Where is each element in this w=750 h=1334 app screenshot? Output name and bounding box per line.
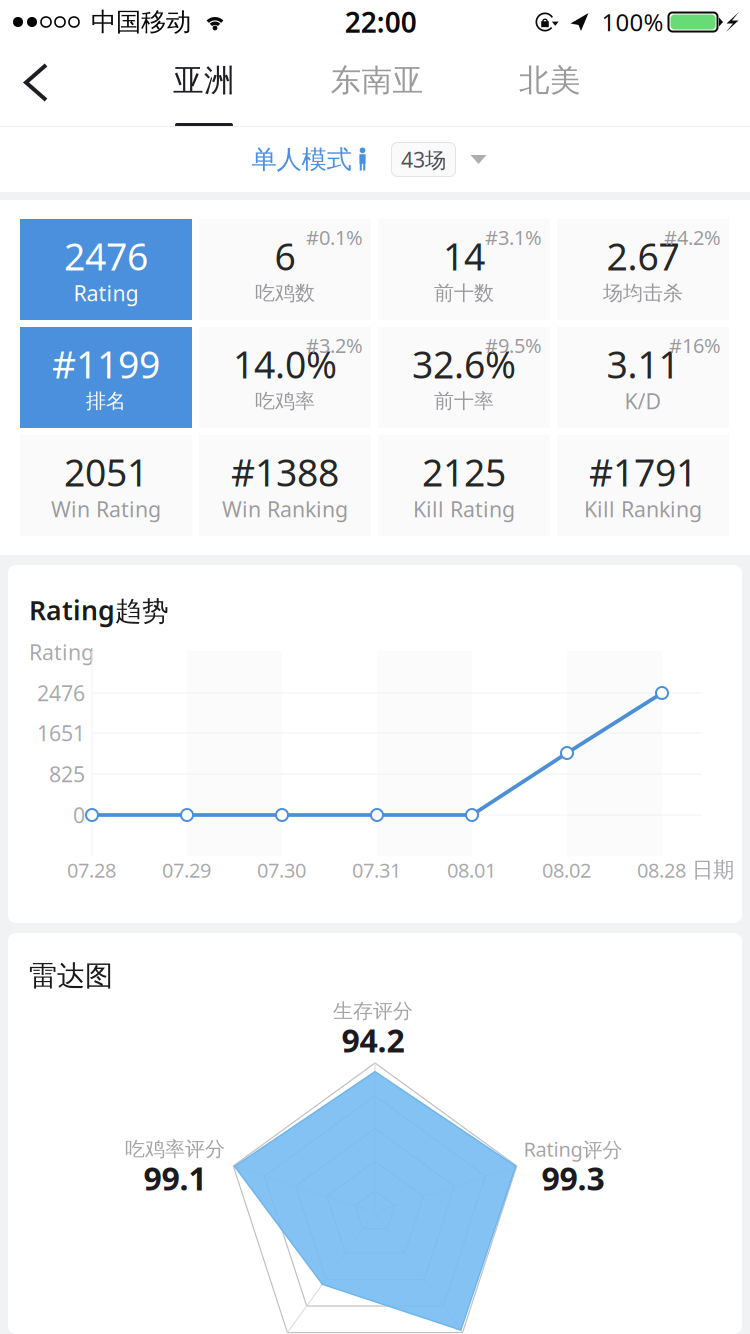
staticText: 94.2 [341,1019,404,1061]
button[interactable]: Back [0,44,74,128]
staticText: 吃鸡率评分 [125,1137,225,1161]
button[interactable]: 单人模式 [251,144,369,175]
staticText: #3.2% [306,332,363,359]
staticText: 场均击杀 [603,281,683,305]
staticText: 07.28 [67,857,116,883]
button[interactable]: 亚洲 [145,44,263,126]
staticText: 100% [601,6,663,38]
staticText: #16% [669,332,721,359]
staticText: 08.01 [447,857,496,883]
staticText: 吃鸡率 [255,389,315,413]
staticText: 2125 [422,447,506,497]
staticText: 22:00 [345,3,417,41]
staticText: 单人模式 [251,144,351,175]
staticText: #1791 [589,447,697,497]
staticText: #4.2% [664,224,721,251]
staticText: 前十数 [434,281,494,305]
staticText: #9.5% [485,332,542,359]
staticText: 中国移动 [91,6,191,37]
staticText: 43场 [401,145,446,174]
button[interactable]: 东南亚 [318,43,436,127]
staticText: 排名 [86,389,126,413]
staticText: #0.1% [306,224,363,251]
staticText: 吃鸡数 [255,281,315,305]
staticText: 2476 [37,679,85,707]
staticText: 32.6% [412,339,516,389]
staticText: 07.30 [257,857,306,883]
staticText: Rating [29,638,94,666]
staticText: 亚洲 [173,62,235,99]
staticText: 6 [274,231,295,281]
button[interactable]: Change filter [458,137,498,182]
staticText: #3.1% [485,224,542,251]
staticText: 08.02 [542,857,591,883]
staticText: 14.0% [233,339,337,389]
staticText: 825 [49,760,85,788]
staticText: 99.3 [541,1157,604,1199]
staticText: 雷达图 [29,959,113,993]
staticText: 北美 [519,62,581,99]
staticText: 0 [73,801,85,829]
staticText: 3.11 [606,339,679,389]
staticText: Rating [73,279,138,307]
staticText: 生存评分 [333,999,413,1023]
staticText: Rating趋势 [29,592,169,628]
button[interactable]: 43场 [391,142,455,176]
staticText: 日期 [692,857,734,883]
staticText: 07.31 [352,857,401,883]
button[interactable]: 北美 [491,43,609,127]
staticText: 东南亚 [330,62,423,99]
staticText: 2051 [64,447,148,497]
staticText: K/D [624,387,661,415]
staticText: 前十率 [434,389,494,413]
staticText: #1388 [231,447,339,497]
staticText: Kill Rating [413,495,515,523]
staticText: Win Rating [51,495,161,523]
staticText: 1651 [37,719,85,747]
staticText: 2.67 [606,231,679,281]
staticText: Rating评分 [523,1136,622,1162]
staticText: 07.29 [162,857,211,883]
staticText: Win Ranking [222,495,348,523]
staticText: #1199 [52,339,160,389]
staticText: 2476 [64,231,148,281]
staticText: 08.28 [637,857,686,883]
staticText: 14 [443,231,485,281]
staticText: Kill Ranking [584,495,702,523]
staticText: 99.1 [143,1157,206,1199]
